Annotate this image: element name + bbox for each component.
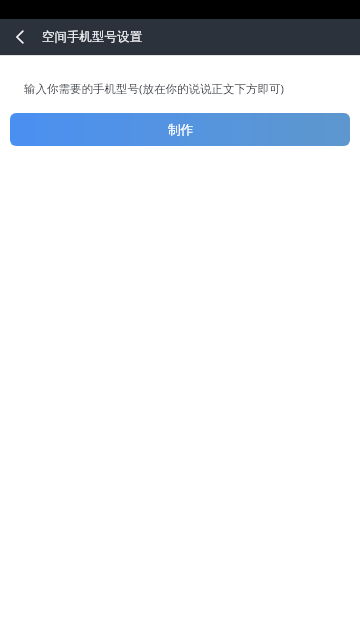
staticText: 制作 [168, 122, 193, 138]
button[interactable]: Back [0, 19, 40, 55]
button[interactable]: 制作 [10, 113, 350, 146]
staticText: 输入你需要的手机型号(放在你的说说正文下方即可) [24, 81, 284, 97]
staticText: 空间手机型号设置 [42, 29, 142, 45]
